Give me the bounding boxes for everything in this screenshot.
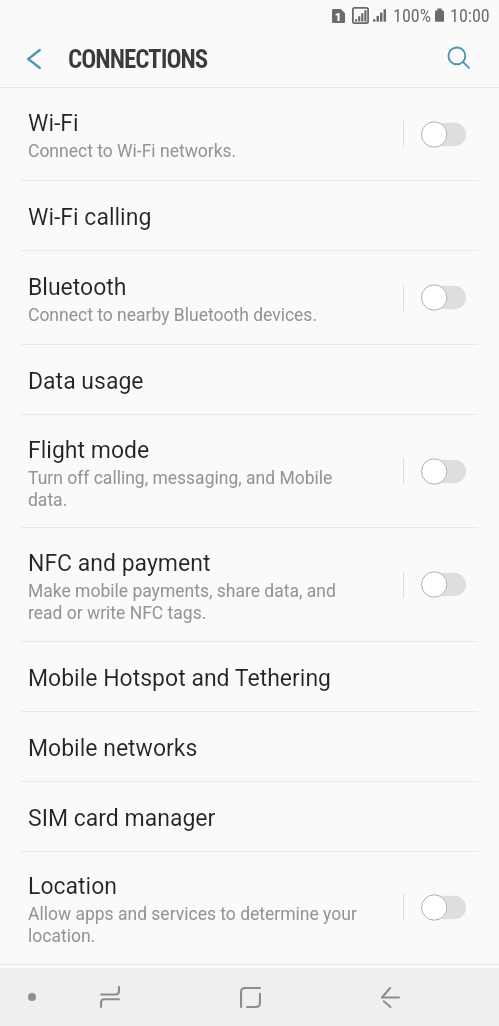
- button[interactable]: Hide navigation bar: [8, 973, 56, 1021]
- staticText: Turn off calling, messaging, and Mobile …: [28, 468, 333, 510]
- staticText: CONNECTIONS: [68, 45, 208, 74]
- staticText: Make mobile payments, share data, and re…: [28, 581, 336, 623]
- staticText: Connect to Wi-Fi networks.: [28, 141, 237, 162]
- button[interactable]: NFC and payment: [0, 528, 499, 641]
- button[interactable]: Wi-Fi calling: [0, 181, 499, 250]
- staticText: 100%: [393, 5, 432, 26]
- button[interactable]: Flight mode: [0, 415, 499, 527]
- staticText: Flight mode: [28, 437, 150, 464]
- button[interactable]: Navigate up: [0, 31, 68, 87]
- button[interactable]: Toggle: [421, 121, 466, 148]
- button[interactable]: Back: [346, 971, 434, 1023]
- button[interactable]: Toggle: [421, 571, 466, 598]
- staticText: NFC and payment: [28, 550, 211, 577]
- staticText: Connect to nearby Bluetooth devices.: [28, 305, 317, 326]
- button[interactable]: Search: [421, 31, 499, 87]
- button[interactable]: Toggle: [421, 284, 466, 311]
- staticText: 10:00: [450, 5, 490, 26]
- staticText: Wi-Fi: [28, 110, 79, 137]
- button[interactable]: Location: [0, 852, 499, 962]
- button[interactable]: Mobile networks: [0, 712, 499, 781]
- staticText: Mobile networks: [28, 735, 198, 762]
- staticText: Data usage: [28, 368, 144, 395]
- staticText: SIM card manager: [28, 805, 216, 832]
- staticText: 1: [335, 11, 342, 24]
- staticText: Allow apps and services to determine you…: [28, 904, 357, 946]
- button[interactable]: Toggle: [421, 894, 466, 921]
- button[interactable]: Bluetooth: [0, 251, 499, 344]
- button[interactable]: Home: [206, 971, 294, 1023]
- button[interactable]: Data usage: [0, 345, 499, 414]
- staticText: Mobile Hotspot and Tethering: [28, 665, 332, 692]
- staticText: Bluetooth: [28, 274, 127, 301]
- staticText: Wi-Fi calling: [28, 204, 152, 231]
- button[interactable]: Recent apps: [66, 971, 154, 1023]
- button[interactable]: Wi-Fi: [0, 88, 499, 180]
- button[interactable]: Toggle: [421, 458, 466, 485]
- button[interactable]: SIM card manager: [0, 782, 499, 851]
- button[interactable]: Mobile Hotspot and Tethering: [0, 642, 499, 711]
- staticText: Location: [28, 873, 117, 900]
